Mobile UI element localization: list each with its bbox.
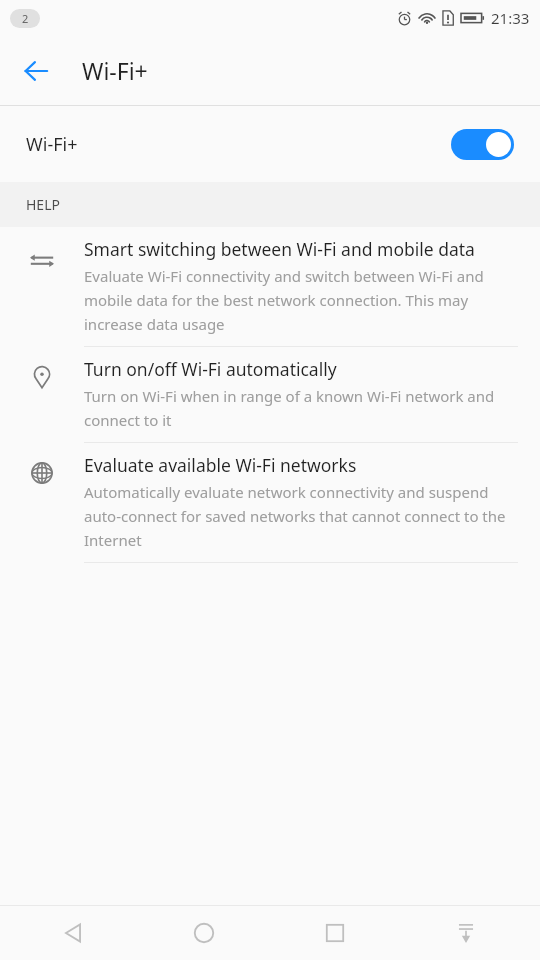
- staticText: Automatically evaluate network connectiv…: [84, 482, 518, 550]
- staticText: Wi-Fi+: [26, 132, 78, 157]
- staticText: Turn on/off Wi-Fi automatically: [84, 357, 337, 381]
- staticText: Turn on Wi-Fi when in range of a known W…: [84, 386, 518, 430]
- button[interactable]: Home: [172, 906, 236, 960]
- button[interactable]: Turn on/off Wi-Fi automatically: [0, 347, 540, 443]
- button[interactable]: Back: [12, 47, 60, 95]
- staticText: 21:33: [491, 8, 530, 28]
- button[interactable]: Evaluate available Wi-Fi networks: [0, 443, 540, 563]
- staticText: 2: [22, 11, 29, 26]
- staticText: Evaluate Wi-Fi connectivity and switch b…: [84, 266, 518, 334]
- button[interactable]: Wi-Fi+: [0, 106, 540, 182]
- staticText: Smart switching between Wi-Fi and mobile…: [84, 237, 475, 261]
- staticText: Evaluate available Wi-Fi networks: [84, 453, 357, 477]
- button[interactable]: Back: [41, 906, 105, 960]
- staticText: HELP: [26, 195, 60, 214]
- staticText: Wi-Fi+: [82, 55, 148, 86]
- button[interactable]: Smart switching between Wi-Fi and mobile…: [0, 227, 540, 347]
- button[interactable]: Recent apps: [303, 906, 367, 960]
- button[interactable]: Hide navigation bar: [434, 906, 498, 960]
